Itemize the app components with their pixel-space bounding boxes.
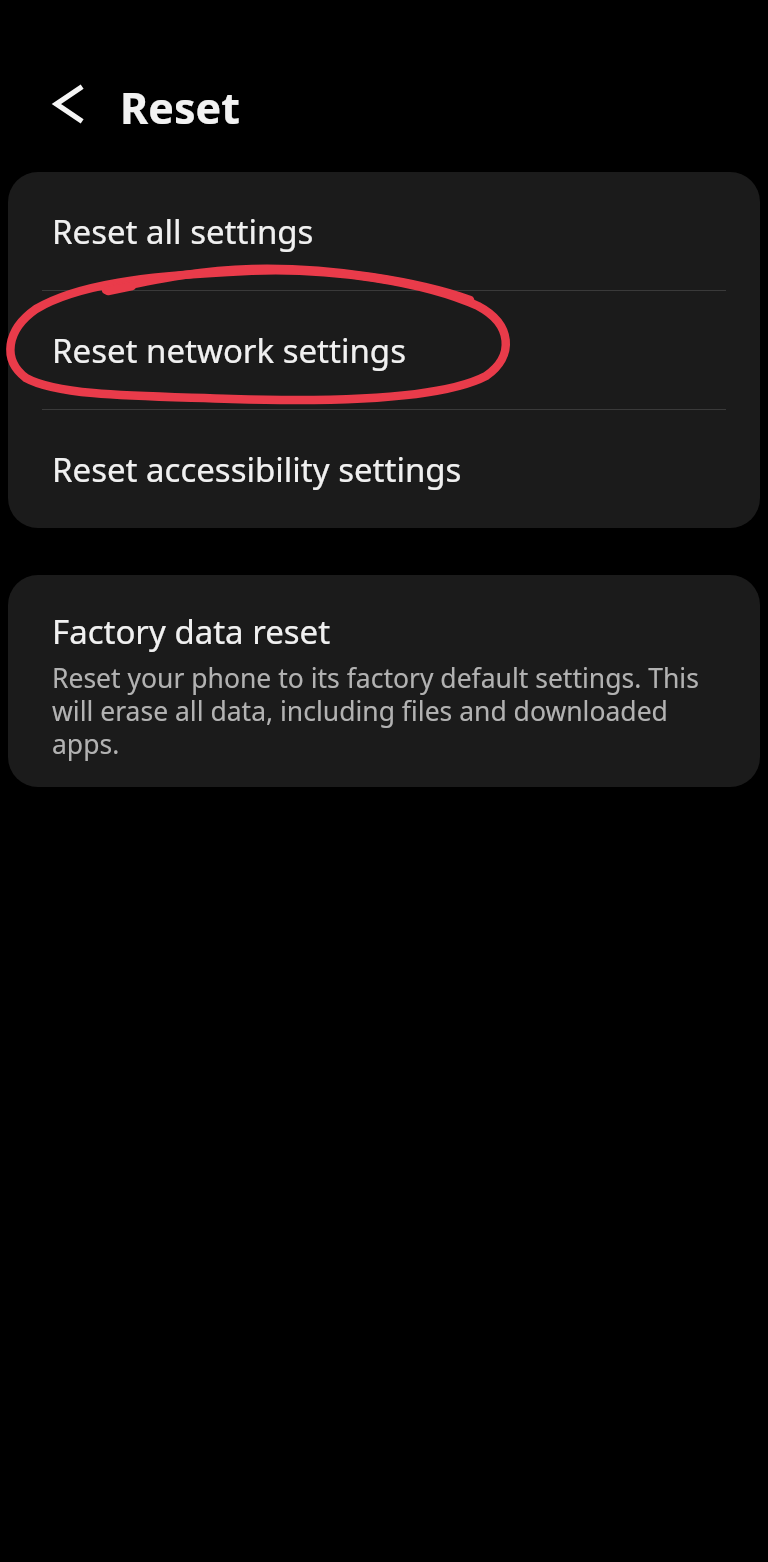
staticText: Reset your phone to its factory default … (52, 660, 720, 762)
button[interactable]: Factory data reset (8, 575, 760, 787)
button[interactable]: Reset network settings (8, 291, 760, 409)
staticText: Factory data reset (52, 609, 331, 654)
button[interactable]: Reset accessibility settings (8, 410, 760, 528)
staticText: Reset (120, 78, 240, 137)
staticText: Reset all settings (52, 209, 314, 254)
button[interactable]: Back (40, 72, 104, 136)
staticText: Reset accessibility settings (52, 447, 462, 492)
staticText: Reset network settings (52, 328, 406, 373)
button[interactable]: Reset all settings (8, 172, 760, 290)
